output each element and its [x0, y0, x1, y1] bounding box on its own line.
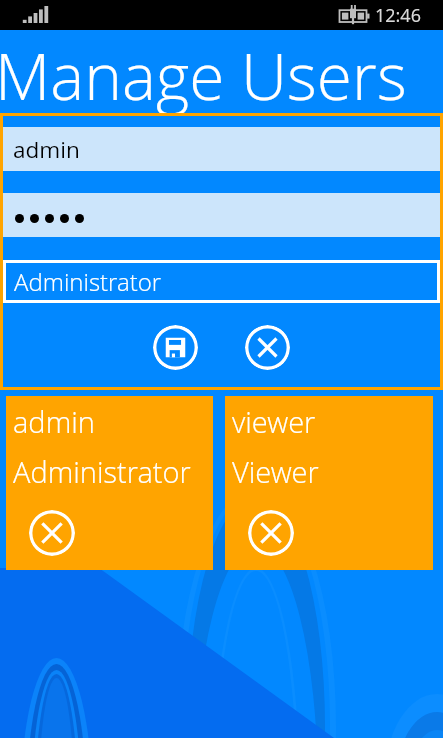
staticText: 12:46: [375, 3, 421, 28]
button[interactable]: Delete admin: [29, 510, 75, 556]
staticText: Manage Users: [0, 32, 407, 115]
staticText: Viewer: [232, 452, 319, 491]
staticText: Administrator: [14, 265, 162, 298]
button[interactable]: Cancel: [245, 325, 290, 370]
button[interactable]: admin: [3, 127, 440, 171]
button[interactable]: [3, 193, 440, 237]
button[interactable]: Administrator: [3, 260, 440, 303]
staticText: Administrator: [13, 452, 191, 491]
button[interactable]: Save: [153, 325, 198, 370]
staticText: viewer: [232, 402, 316, 441]
staticText: admin: [13, 402, 95, 441]
button[interactable]: viewer: [225, 396, 433, 570]
button[interactable]: Delete viewer: [248, 510, 294, 556]
staticText: admin: [13, 134, 80, 165]
button[interactable]: admin: [6, 396, 213, 570]
